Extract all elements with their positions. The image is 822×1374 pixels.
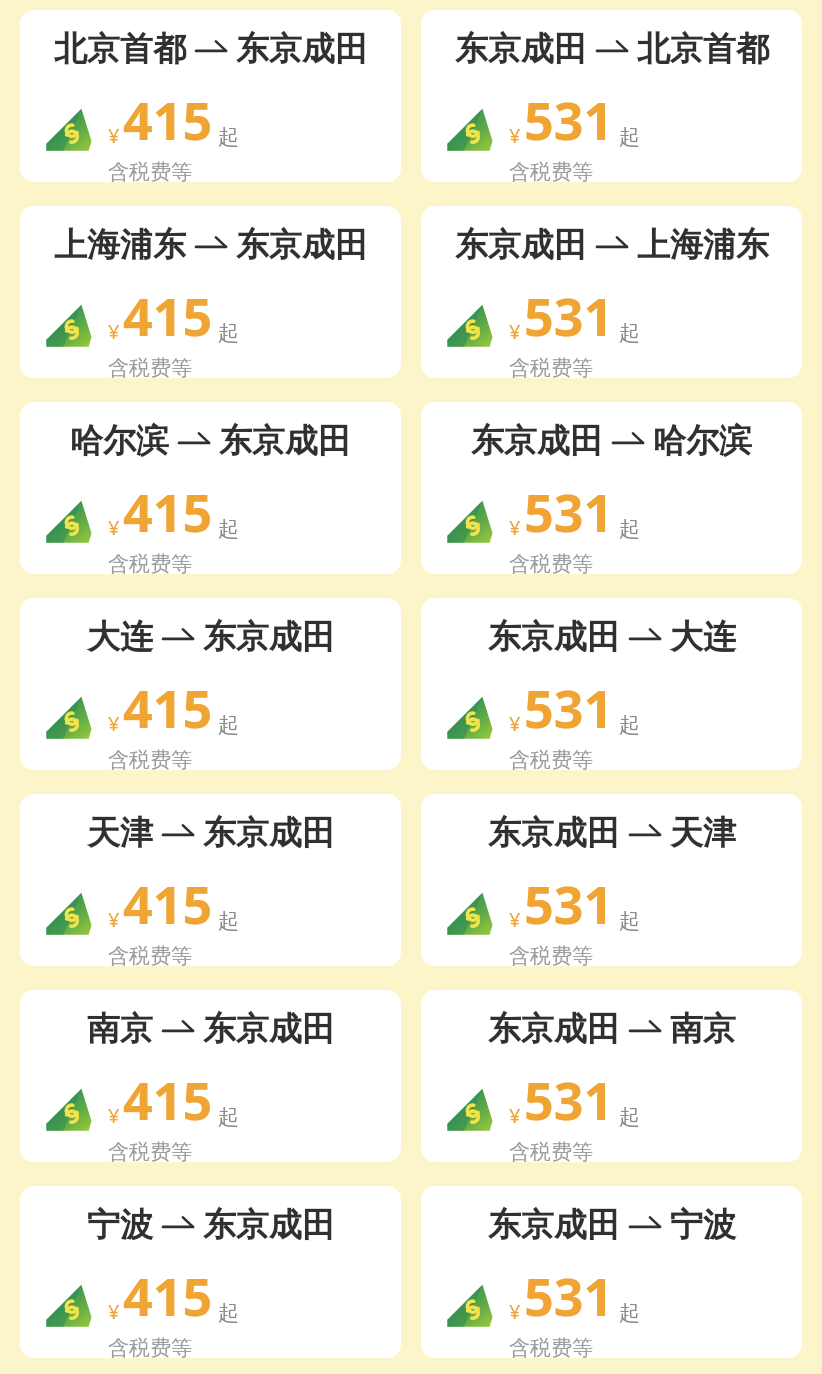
staticText: ¥ — [108, 1298, 120, 1325]
button[interactable]: 东京成田 — [421, 10, 802, 182]
staticText: 东京成田 — [236, 224, 368, 266]
staticText: 531 — [524, 1260, 614, 1331]
staticText: 东京成田 — [219, 420, 351, 462]
staticText: 哈尔滨 — [653, 420, 752, 462]
button[interactable]: 东京成田 — [421, 206, 802, 378]
staticText: 东京成田 — [488, 616, 620, 658]
staticText: 北京首都 — [54, 28, 186, 70]
staticText: ¥ — [509, 122, 521, 149]
staticText: 415 — [123, 84, 213, 155]
staticText: 531 — [524, 672, 614, 743]
button[interactable]: 东京成田 — [421, 794, 802, 966]
staticText: 起 — [619, 1300, 640, 1326]
staticText: 北京首都 — [637, 28, 769, 70]
button[interactable]: 东京成田 — [421, 598, 802, 770]
staticText: 含税费等 — [509, 747, 593, 770]
button[interactable]: 东京成田 — [421, 1186, 802, 1358]
staticText: 上海浦东 — [54, 224, 186, 266]
staticText: 东京成田 — [488, 812, 620, 854]
staticText: ¥ — [509, 710, 521, 737]
staticText: 含税费等 — [509, 159, 593, 182]
staticText: 起 — [619, 712, 640, 738]
staticText: 东京成田 — [488, 1008, 620, 1050]
staticText: ¥ — [108, 906, 120, 933]
staticText: 含税费等 — [509, 1335, 593, 1358]
staticText: ¥ — [509, 906, 521, 933]
staticText: 起 — [619, 320, 640, 346]
staticText: 宁波 — [670, 1204, 736, 1246]
staticText: 南京 — [87, 1008, 153, 1050]
button[interactable]: 大连 — [20, 598, 401, 770]
staticText: 531 — [524, 280, 614, 351]
staticText: 起 — [619, 124, 640, 150]
staticText: ¥ — [509, 514, 521, 541]
staticText: 宁波 — [87, 1204, 153, 1246]
staticText: 起 — [619, 1104, 640, 1130]
button[interactable]: 哈尔滨 — [20, 402, 401, 574]
staticText: ¥ — [108, 710, 120, 737]
staticText: 东京成田 — [471, 420, 603, 462]
staticText: 含税费等 — [108, 551, 192, 574]
staticText: 南京 — [670, 1008, 736, 1050]
staticText: 起 — [218, 712, 239, 738]
button[interactable]: 北京首都 — [20, 10, 401, 182]
staticText: 东京成田 — [203, 616, 335, 658]
staticText: 天津 — [670, 812, 736, 854]
staticText: 东京成田 — [455, 224, 587, 266]
staticText: 天津 — [87, 812, 153, 854]
staticText: ¥ — [108, 1102, 120, 1129]
staticText: ¥ — [108, 318, 120, 345]
staticText: 含税费等 — [108, 355, 192, 378]
staticText: 含税费等 — [509, 355, 593, 378]
staticText: 大连 — [670, 616, 736, 658]
staticText: 415 — [123, 1064, 213, 1135]
staticText: 531 — [524, 476, 614, 547]
staticText: 含税费等 — [108, 1139, 192, 1162]
staticText: 起 — [218, 1300, 239, 1326]
staticText: 415 — [123, 476, 213, 547]
staticText: 东京成田 — [203, 1204, 335, 1246]
staticText: 东京成田 — [236, 28, 368, 70]
staticText: 含税费等 — [108, 943, 192, 966]
staticText: 531 — [524, 84, 614, 155]
staticText: 含税费等 — [509, 551, 593, 574]
staticText: 起 — [218, 320, 239, 346]
staticText: 起 — [619, 908, 640, 934]
staticText: 大连 — [87, 616, 153, 658]
staticText: 含税费等 — [509, 943, 593, 966]
button[interactable]: 宁波 — [20, 1186, 401, 1358]
staticText: 415 — [123, 280, 213, 351]
staticText: 含税费等 — [509, 1139, 593, 1162]
staticText: 415 — [123, 868, 213, 939]
staticText: 415 — [123, 672, 213, 743]
staticText: 含税费等 — [108, 159, 192, 182]
button[interactable]: 东京成田 — [421, 402, 802, 574]
staticText: 东京成田 — [203, 1008, 335, 1050]
staticText: ¥ — [509, 318, 521, 345]
staticText: 起 — [218, 124, 239, 150]
staticText: 上海浦东 — [637, 224, 769, 266]
staticText: 起 — [218, 1104, 239, 1130]
staticText: ¥ — [108, 122, 120, 149]
staticText: 含税费等 — [108, 747, 192, 770]
button[interactable]: 上海浦东 — [20, 206, 401, 378]
staticText: 含税费等 — [108, 1335, 192, 1358]
staticText: 哈尔滨 — [70, 420, 169, 462]
button[interactable]: 东京成田 — [421, 990, 802, 1162]
staticText: 起 — [218, 908, 239, 934]
staticText: 东京成田 — [488, 1204, 620, 1246]
staticText: ¥ — [108, 514, 120, 541]
staticText: 起 — [218, 516, 239, 542]
button[interactable]: 天津 — [20, 794, 401, 966]
staticText: 起 — [619, 516, 640, 542]
staticText: 531 — [524, 1064, 614, 1135]
button[interactable]: 南京 — [20, 990, 401, 1162]
staticText: ¥ — [509, 1298, 521, 1325]
staticText: 531 — [524, 868, 614, 939]
staticText: 东京成田 — [203, 812, 335, 854]
staticText: ¥ — [509, 1102, 521, 1129]
staticText: 东京成田 — [455, 28, 587, 70]
staticText: 415 — [123, 1260, 213, 1331]
